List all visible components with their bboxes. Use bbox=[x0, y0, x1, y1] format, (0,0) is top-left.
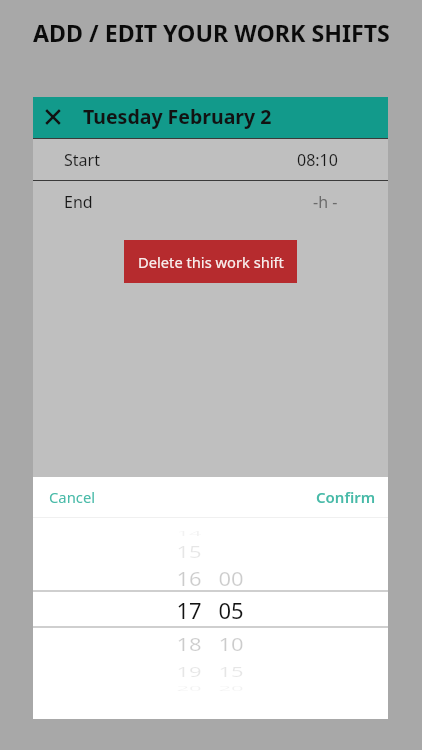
staticText: 17 bbox=[176, 595, 202, 625]
staticText: Start bbox=[64, 149, 100, 171]
button[interactable]: Start bbox=[33, 139, 388, 180]
staticText: 19 bbox=[176, 662, 202, 680]
staticText: 18 bbox=[176, 631, 202, 656]
staticText: 00 bbox=[218, 565, 244, 591]
staticText: 14 bbox=[176, 528, 202, 538]
staticText: ADD / EDIT YOUR WORK SHIFTS bbox=[33, 17, 390, 49]
button[interactable]: Close bbox=[34, 99, 71, 136]
staticText: 20 bbox=[176, 683, 202, 693]
staticText: 05 bbox=[218, 595, 244, 625]
button[interactable]: Delete this work shift bbox=[124, 240, 297, 283]
staticText: 16 bbox=[176, 565, 202, 591]
staticText: 15 bbox=[218, 662, 244, 680]
staticText: -h - bbox=[313, 191, 338, 213]
button[interactable]: Confirm bbox=[302, 477, 388, 517]
staticText: 15 bbox=[176, 540, 202, 562]
staticText: 20 bbox=[218, 683, 244, 693]
button[interactable]: Cancel bbox=[33, 477, 110, 517]
staticText: 10 bbox=[218, 631, 244, 656]
staticText: Delete this work shift bbox=[138, 252, 284, 272]
button[interactable]: End bbox=[33, 181, 388, 222]
staticText: Cancel bbox=[49, 487, 96, 507]
staticText: End bbox=[64, 191, 93, 213]
staticText: Tuesday February 2 bbox=[83, 103, 272, 130]
staticText: Confirm bbox=[316, 487, 376, 507]
staticText: 08:10 bbox=[297, 149, 338, 171]
